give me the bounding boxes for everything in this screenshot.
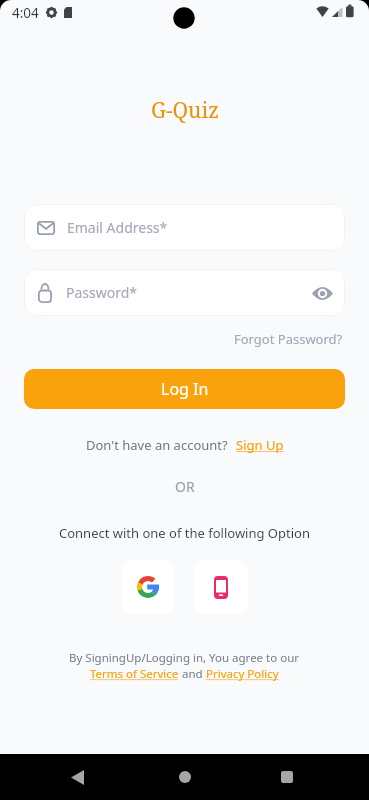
- staticText: OR: [175, 477, 195, 496]
- staticText: and: [179, 666, 206, 682]
- button[interactable]: Sign Up: [236, 436, 284, 454]
- staticText: Forgot Password?: [234, 330, 343, 348]
- staticText: Sign Up: [236, 436, 284, 454]
- button[interactable]: [62, 762, 92, 792]
- staticText: Log In: [161, 378, 209, 400]
- staticText: Email Address*: [67, 218, 168, 237]
- button[interactable]: [121, 560, 175, 614]
- button[interactable]: Forgot Password?: [234, 330, 343, 348]
- button[interactable]: [194, 560, 248, 614]
- button[interactable]: Email Address*: [24, 204, 345, 251]
- staticText: Connect with one of the following Option: [59, 524, 310, 542]
- button[interactable]: Password*: [24, 269, 345, 316]
- button[interactable]: Privacy Policy: [206, 666, 279, 682]
- staticText: By SigningUp/Logging in, You agree to ou…: [69, 650, 300, 666]
- button[interactable]: [170, 762, 200, 792]
- staticText: Privacy Policy: [206, 666, 279, 682]
- staticText: G-Quiz: [151, 96, 219, 125]
- staticText: Password*: [66, 283, 138, 302]
- staticText: Terms of Service: [90, 666, 179, 682]
- button[interactable]: [272, 762, 302, 792]
- button[interactable]: Terms of Service: [90, 666, 179, 682]
- staticText: 4:04: [12, 4, 39, 22]
- button[interactable]: Log In: [24, 369, 345, 409]
- button[interactable]: [299, 270, 345, 316]
- staticText: Don't have an account?: [86, 436, 228, 454]
